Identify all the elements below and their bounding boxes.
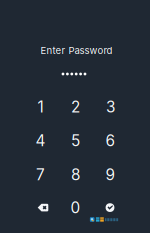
button[interactable]: 9 [93,158,128,192]
button[interactable]: Delete [25,191,60,225]
button[interactable]: 0 [58,191,93,225]
button[interactable]: 2 [58,90,93,124]
staticText: 5 [71,131,80,150]
staticText: 9 [105,165,115,184]
button[interactable]: 4 [23,124,58,158]
button[interactable]: 7 [23,158,58,192]
staticText: 1 [37,97,43,116]
staticText: 0 [70,198,80,217]
staticText: 6 [105,131,115,150]
button[interactable]: 5 [58,124,93,158]
staticText: 7 [36,165,45,184]
button[interactable]: 6 [93,124,128,158]
button[interactable]: Confirm [92,191,127,225]
staticText: 2 [71,97,80,116]
button[interactable]: 8 [58,158,93,192]
staticText: 4 [35,131,45,150]
staticText: 3 [106,97,115,116]
button[interactable]: 1 [23,90,58,124]
button[interactable]: 3 [93,90,128,124]
staticText: Enter Password [40,45,112,56]
staticText: 8 [71,165,80,184]
